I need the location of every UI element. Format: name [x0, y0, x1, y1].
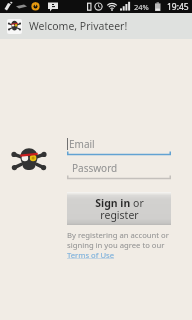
- other: Pirate logo: [9, 144, 49, 178]
- button[interactable]: Email: [67, 137, 171, 156]
- staticText: 24%: [134, 2, 149, 12]
- staticText: 19:45: [167, 1, 189, 13]
- staticText: Sign in or register: [95, 196, 144, 222]
- staticText: Welcome, Privateer!: [29, 19, 128, 33]
- staticText: Password: [72, 161, 118, 175]
- staticText: Email: [69, 137, 95, 151]
- staticText: By registering an account or signing in …: [67, 230, 169, 250]
- button[interactable]: Password: [67, 161, 171, 180]
- button[interactable]: App icon: [7, 19, 22, 34]
- button[interactable]: Sign in or register: [67, 192, 171, 225]
- button[interactable]: Terms of Use: [67, 250, 115, 260]
